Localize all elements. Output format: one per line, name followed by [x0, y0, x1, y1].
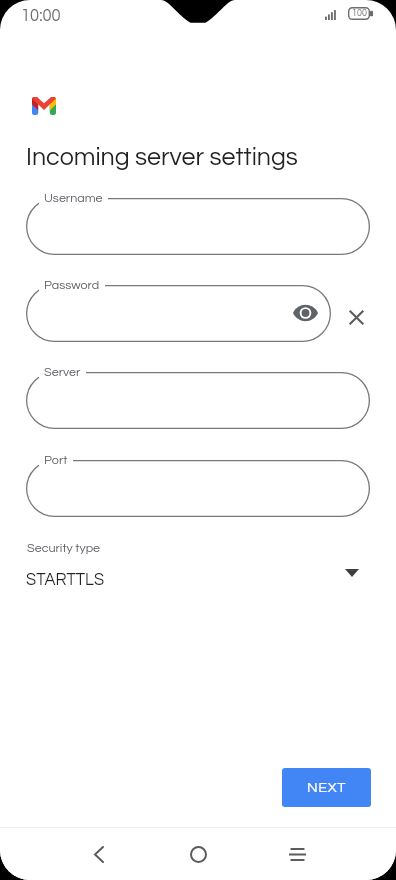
staticText: Incoming server settings [26, 144, 298, 170]
staticText: NEXT [307, 780, 346, 795]
button[interactable]: Recent apps [273, 830, 321, 878]
button[interactable]: Server [26, 372, 370, 429]
staticText: STARTTLS [26, 571, 105, 588]
staticText: Security type [27, 542, 101, 555]
staticText: 10:00 [21, 7, 61, 24]
staticText: Password [44, 279, 100, 292]
button[interactable]: NEXT [282, 768, 371, 807]
staticText: Username [44, 192, 103, 205]
staticText: 100 [352, 9, 367, 18]
button[interactable]: Home [174, 830, 222, 878]
button[interactable]: Security type [0, 536, 396, 594]
staticText: Server [44, 366, 81, 379]
button[interactable]: Clear password [340, 301, 373, 334]
staticText: Port [44, 454, 68, 467]
button[interactable]: Back [75, 830, 123, 878]
button[interactable]: Show password [289, 297, 321, 329]
button[interactable]: Port [26, 460, 370, 517]
button[interactable]: Password [26, 285, 331, 342]
button[interactable]: Username [26, 198, 370, 255]
